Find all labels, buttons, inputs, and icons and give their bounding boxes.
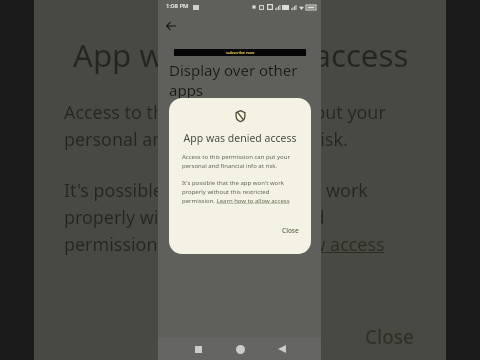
staticText: Access to this permission can put your p… xyxy=(64,100,386,151)
staticText: Close xyxy=(365,324,414,350)
staticText: subscribe now xyxy=(226,50,255,56)
staticText: App was denied access xyxy=(73,34,409,76)
button[interactable]: Close xyxy=(277,223,304,238)
staticText: App was denied access xyxy=(169,131,311,145)
staticText: Access to this permission can put your p… xyxy=(182,153,290,170)
button[interactable]: Recent apps xyxy=(185,338,211,360)
staticText: It's possible that the app won't work pr… xyxy=(182,179,290,205)
button[interactable]: Back xyxy=(164,19,178,33)
button[interactable]: Home xyxy=(227,338,253,360)
staticText: Close xyxy=(282,226,299,235)
staticText: Display over other apps xyxy=(169,60,298,100)
staticText: It's possible that the app won't work pr… xyxy=(64,178,385,256)
button[interactable]: Back xyxy=(269,338,295,360)
staticText: 1:08 PM xyxy=(166,2,189,10)
